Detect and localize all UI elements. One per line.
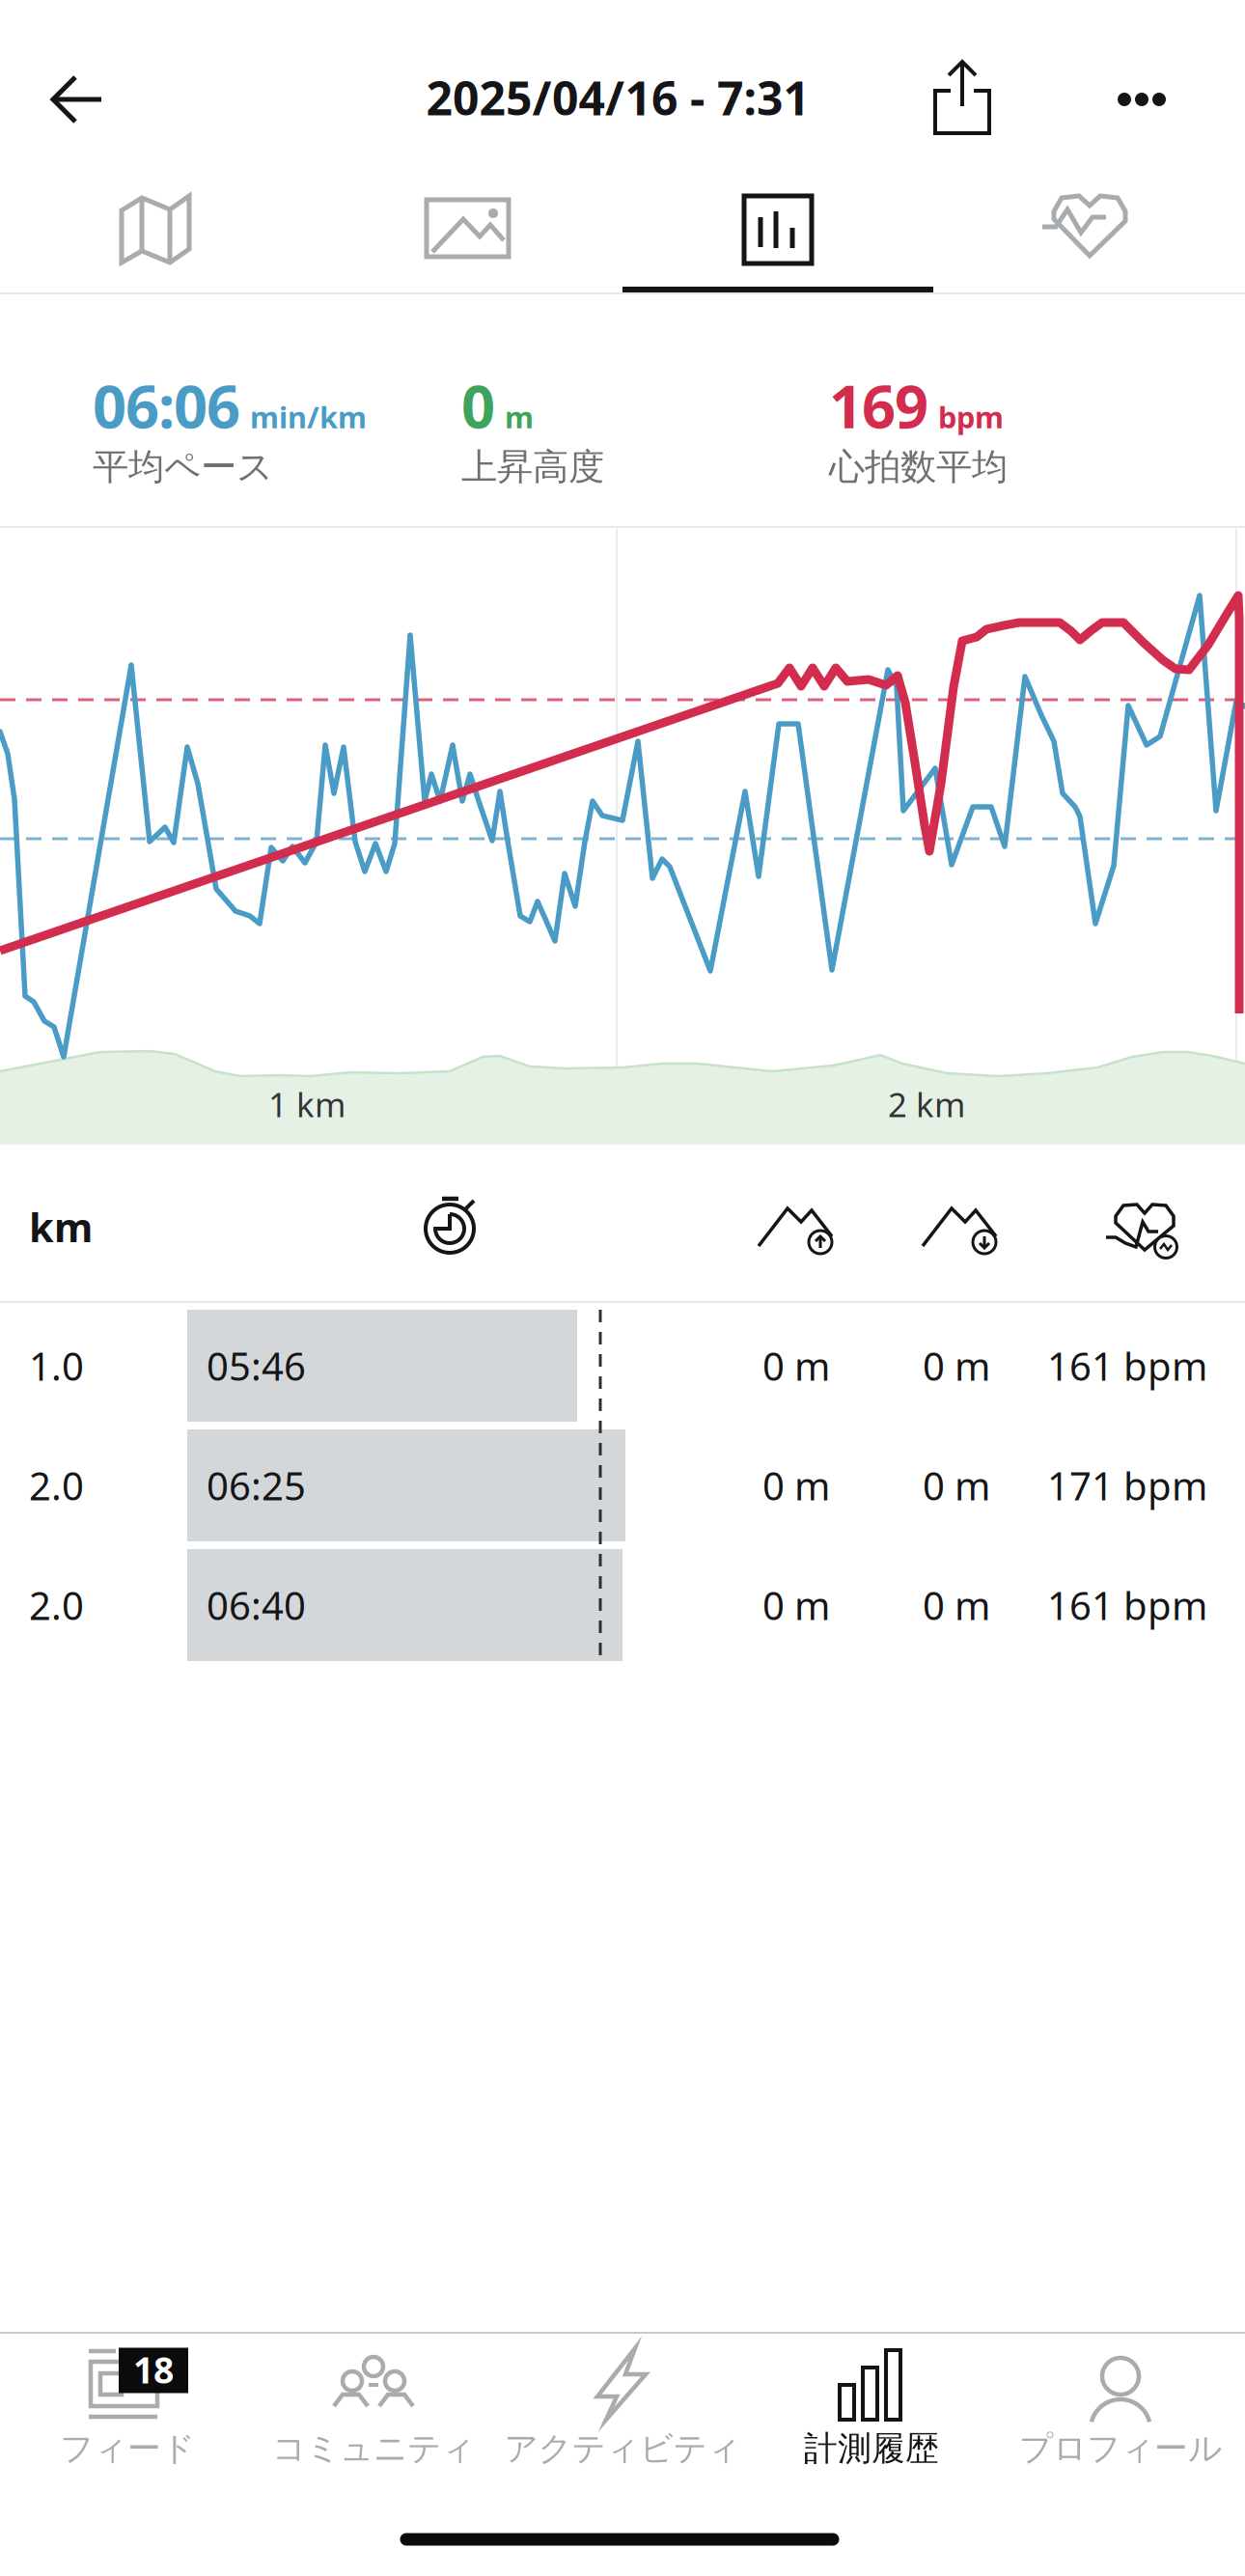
button[interactable] [622, 171, 933, 287]
staticText: 161 bpm [1047, 1340, 1207, 1391]
staticText: bpm [938, 397, 1004, 437]
button[interactable]: プロフィール [996, 2321, 1245, 2495]
button[interactable]: アクティビティ [498, 2321, 747, 2495]
button[interactable] [1113, 85, 1171, 114]
staticText: プロフィール [1019, 2428, 1222, 2469]
staticText: 平均ペース [93, 445, 273, 489]
staticText: 0 m [762, 1340, 830, 1391]
staticText: 心拍数平均 [829, 445, 1008, 489]
staticText: 161 bpm [1047, 1579, 1207, 1631]
staticText: 2 km [888, 1082, 965, 1126]
staticText: アクティビティ [504, 2428, 741, 2469]
button[interactable] [34, 56, 121, 143]
staticText: 0 m [923, 1579, 990, 1631]
staticText: 171 bpm [1047, 1460, 1207, 1511]
staticText: 2.0 [29, 1579, 84, 1631]
staticText: 0 m [762, 1460, 830, 1511]
button[interactable] [312, 171, 622, 287]
staticText: 05:46 [207, 1340, 306, 1391]
staticText: km [29, 1200, 93, 1253]
button[interactable]: 18 [0, 2321, 249, 2495]
staticText: 0 m [762, 1579, 830, 1631]
button[interactable] [934, 171, 1245, 287]
button[interactable]: 計測履歴 [747, 2321, 996, 2495]
staticText: 18 [133, 2346, 174, 2393]
button[interactable]: コミュニティ [249, 2321, 498, 2495]
button[interactable] [926, 58, 999, 135]
staticText: 0 m [923, 1460, 990, 1511]
staticText: 06:06 [93, 366, 240, 445]
staticText: コミュニティ [272, 2428, 475, 2469]
staticText: 06:25 [207, 1460, 306, 1511]
staticText: 上昇高度 [461, 445, 604, 489]
staticText: min/km [250, 397, 367, 437]
staticText: 1.0 [29, 1340, 84, 1391]
staticText: 2.0 [29, 1460, 84, 1511]
staticText: 2025/04/16 - 7:31 [426, 67, 809, 128]
staticText: 0 m [923, 1340, 990, 1391]
staticText: 計測履歴 [804, 2428, 939, 2469]
staticText: m [505, 397, 534, 437]
staticText: 169 [829, 366, 928, 445]
staticText: フィード [60, 2428, 195, 2469]
staticText: 06:40 [207, 1579, 306, 1631]
staticText: 0 [461, 366, 495, 445]
staticText: 1 km [268, 1082, 346, 1126]
button[interactable] [0, 171, 311, 287]
